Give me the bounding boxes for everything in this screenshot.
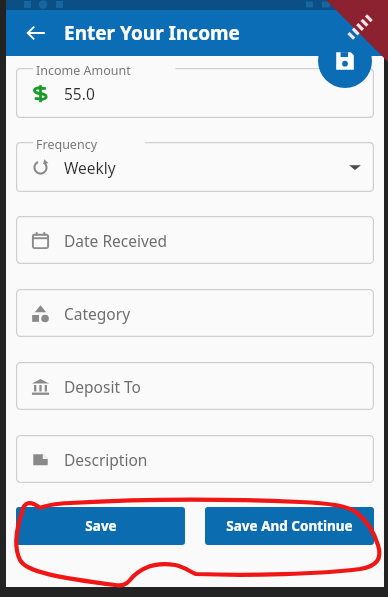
staticText: Category [64,303,131,324]
staticText: Description [64,449,148,470]
button[interactable]: Category [16,289,374,337]
button[interactable]: Deposit To [16,362,374,410]
staticText: Weekly [64,157,116,178]
staticText: Frequency [36,136,98,153]
button[interactable]: Description [16,435,374,483]
button[interactable]: Weekly [16,142,374,192]
staticText: Date Received [64,230,168,251]
staticText: Save [85,517,117,535]
staticText: 55.0 [64,83,95,104]
button[interactable]: Back [16,13,56,53]
staticText: Income Amount [36,62,131,79]
button[interactable]: 55.0 [16,68,374,118]
staticText: Deposit To [64,376,141,397]
button[interactable]: Save [318,34,372,88]
staticText: Enter Your Income [64,20,240,46]
button[interactable]: Save And Continue [205,507,374,545]
button[interactable]: Date Received [16,216,374,264]
staticText: Save And Continue [226,517,353,535]
button[interactable]: Save [16,507,185,545]
